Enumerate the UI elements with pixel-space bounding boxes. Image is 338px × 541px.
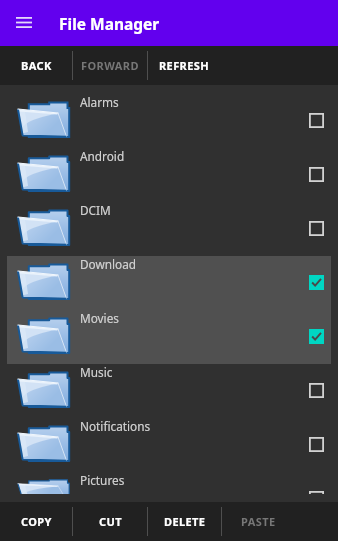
button[interactable]: COPY bbox=[0, 502, 72, 541]
button[interactable]: BACK bbox=[0, 46, 72, 85]
staticText: Android bbox=[80, 148, 125, 164]
button[interactable]: REFRESH bbox=[148, 46, 220, 85]
staticText: Movies bbox=[80, 310, 119, 326]
button[interactable]: PASTE bbox=[222, 502, 294, 541]
button[interactable]: Music bbox=[7, 364, 331, 418]
staticText: BACK bbox=[21, 58, 52, 73]
button[interactable]: Select Pictures bbox=[309, 491, 324, 494]
button[interactable]: CUT bbox=[73, 502, 147, 541]
staticText: FORWARD bbox=[81, 58, 139, 73]
button[interactable]: Select Movies bbox=[309, 329, 324, 344]
button[interactable]: Android bbox=[7, 148, 331, 202]
button[interactable]: Open navigation menu bbox=[0, 0, 47, 46]
button[interactable]: Select Alarms bbox=[309, 113, 324, 128]
staticText: Alarms bbox=[80, 94, 119, 110]
staticText: File Manager bbox=[59, 13, 160, 34]
button[interactable]: Alarms bbox=[7, 94, 331, 148]
staticText: CUT bbox=[99, 514, 122, 529]
button[interactable]: Select Notifications bbox=[309, 437, 324, 452]
staticText: Pictures bbox=[80, 472, 125, 488]
button[interactable]: Pictures bbox=[7, 472, 331, 494]
button[interactable]: Select Download bbox=[309, 275, 324, 290]
button[interactable]: Select DCIM bbox=[309, 221, 324, 236]
button[interactable]: Movies bbox=[7, 310, 331, 364]
staticText: Music bbox=[80, 364, 113, 380]
button[interactable]: DCIM bbox=[7, 202, 331, 256]
staticText: PASTE bbox=[241, 514, 276, 529]
button[interactable]: Notifications bbox=[7, 418, 331, 472]
button[interactable]: FORWARD bbox=[73, 46, 147, 85]
staticText: DELETE bbox=[164, 514, 206, 529]
button[interactable]: DELETE bbox=[148, 502, 221, 541]
button[interactable]: Download bbox=[7, 256, 331, 310]
button[interactable]: Select Android bbox=[309, 167, 324, 182]
staticText: REFRESH bbox=[159, 58, 210, 73]
staticText: DCIM bbox=[80, 202, 111, 218]
staticText: COPY bbox=[21, 514, 52, 529]
button[interactable]: Select Music bbox=[309, 383, 324, 398]
staticText: Download bbox=[80, 256, 137, 272]
staticText: Notifications bbox=[80, 418, 151, 434]
